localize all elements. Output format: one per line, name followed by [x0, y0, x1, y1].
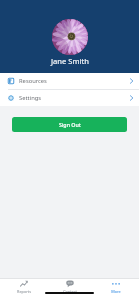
button[interactable]: Contact [47, 279, 93, 294]
other: Contact [66, 280, 74, 288]
staticText: Sign Out [59, 121, 81, 128]
other: Reports [20, 280, 28, 288]
staticText: Contact [63, 289, 77, 294]
staticText: Settings [19, 94, 42, 102]
staticText: Reports [17, 289, 31, 294]
button[interactable]: Sign Out [12, 117, 127, 132]
staticText: More [111, 289, 121, 294]
staticText: Jane Smith [51, 56, 89, 66]
button[interactable]: More [93, 279, 139, 294]
other: More [112, 280, 120, 288]
button[interactable]: Reports [0, 279, 47, 294]
button[interactable]: Settings [0, 90, 139, 106]
staticText: Resources [19, 77, 47, 85]
button[interactable]: Resources [0, 73, 139, 89]
